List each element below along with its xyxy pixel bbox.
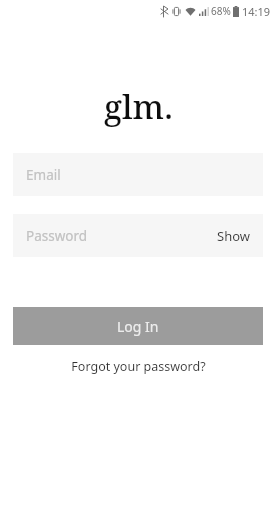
other: Vibrate mode [172, 6, 181, 17]
staticText: 68% [211, 4, 231, 18]
staticText: glm. [104, 84, 173, 129]
other: Cellular signal [199, 7, 209, 16]
button[interactable]: Show [215, 227, 252, 245]
staticText: Forgot your password? [71, 358, 206, 375]
other: Bluetooth [160, 6, 168, 17]
button[interactable]: Forgot your password? [0, 353, 276, 380]
button[interactable]: Email [13, 153, 263, 196]
staticText: Show [217, 227, 250, 245]
button[interactable]: Log In [13, 307, 263, 345]
staticText: Email [26, 166, 252, 184]
button[interactable]: Password [13, 214, 263, 257]
staticText: Password [26, 227, 215, 245]
other: Wi-Fi [185, 7, 196, 16]
staticText: 14:19 [242, 4, 271, 19]
staticText: Log In [117, 317, 159, 336]
other: Battery [233, 6, 239, 17]
